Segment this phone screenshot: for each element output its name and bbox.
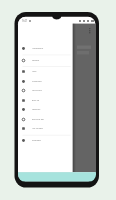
- button[interactable]: Third-party: [18, 86, 73, 95]
- staticText: Net Number: [32, 127, 44, 130]
- button[interactable]: Telegram: [18, 105, 73, 114]
- staticText: Settings: [32, 59, 40, 62]
- staticText: Resource Def: [32, 118, 44, 121]
- button[interactable]: Likes: [18, 67, 73, 76]
- staticText: Likes: [32, 70, 37, 73]
- button[interactable]: Settings: [18, 56, 73, 65]
- staticText: Telegram: [32, 108, 41, 111]
- button[interactable]: Resource Def: [18, 115, 73, 124]
- staticText: Developer: [32, 139, 42, 142]
- button[interactable]: Comments: [18, 77, 73, 86]
- button[interactable]: Net Number: [18, 124, 73, 133]
- staticText: Notifications: [32, 47, 44, 50]
- button[interactable]: Developer: [18, 136, 73, 145]
- button[interactable]: Notifications: [18, 44, 73, 53]
- staticText: Back Up: [32, 99, 40, 102]
- staticText: 9:41: [22, 19, 28, 23]
- button[interactable]: Back Up: [18, 96, 73, 105]
- staticText: Third-party: [32, 89, 42, 92]
- staticText: Comments: [32, 80, 42, 83]
